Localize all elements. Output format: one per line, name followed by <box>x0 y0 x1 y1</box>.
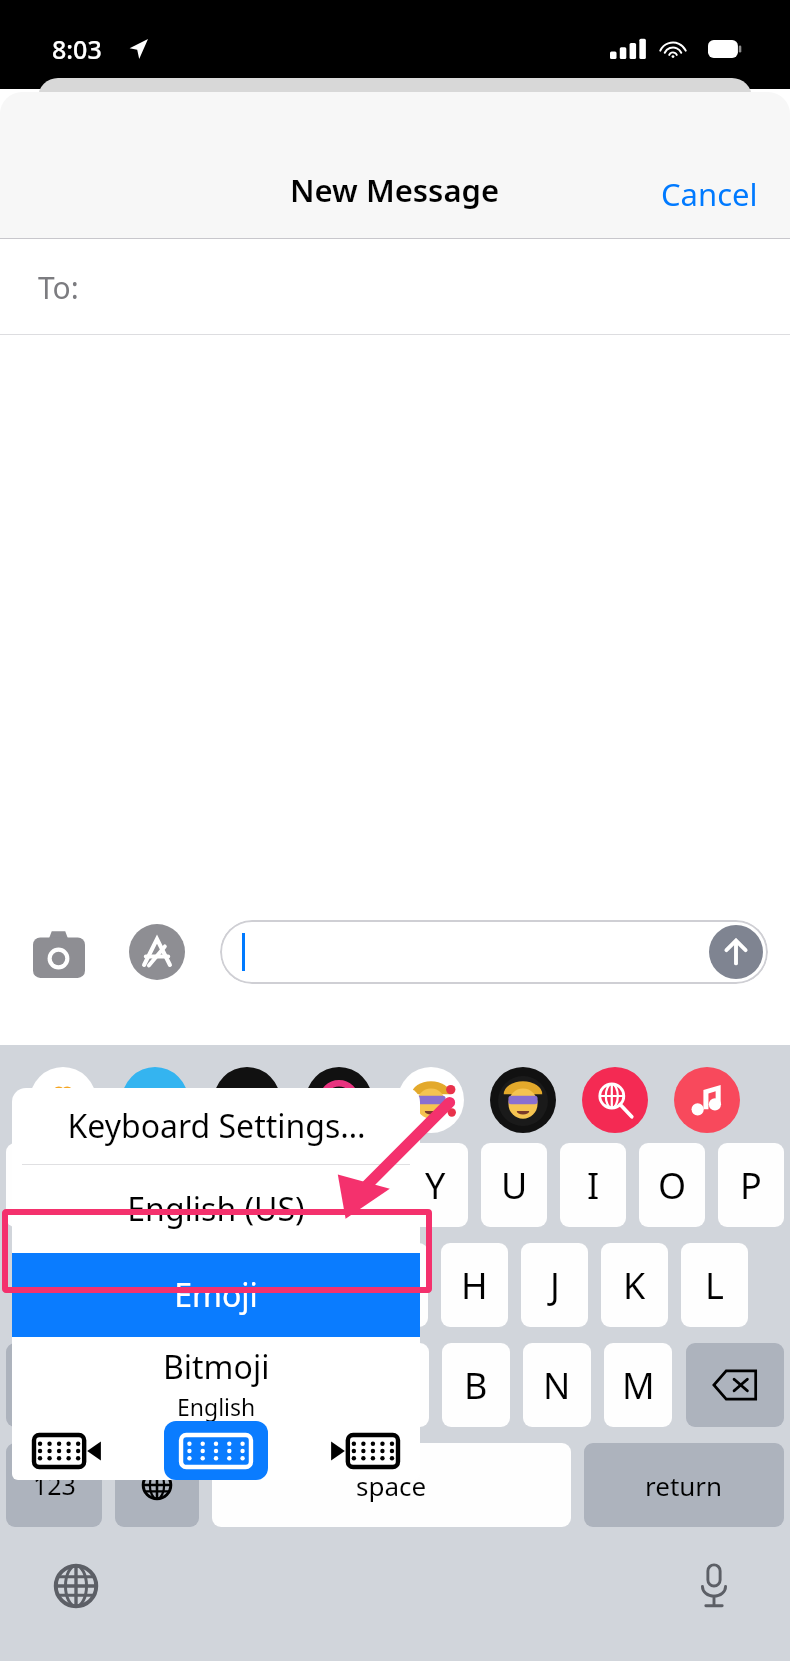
staticText: English (US) <box>127 1187 305 1231</box>
staticText: space <box>356 1468 427 1503</box>
button[interactable]: U <box>481 1143 547 1227</box>
staticText: Bitmoji <box>163 1345 270 1389</box>
button[interactable]: Keyboard layout <box>308 1421 412 1480</box>
staticText: N <box>543 1361 571 1410</box>
staticText: 8:03 <box>52 32 102 66</box>
staticText: X <box>222 1361 244 1410</box>
button[interactable]: English (US) <box>12 1165 420 1253</box>
staticText: Y <box>425 1161 446 1210</box>
button[interactable]: P <box>718 1143 784 1227</box>
button[interactable]: Send <box>220 920 768 984</box>
button[interactable]: Send <box>709 925 763 979</box>
staticText: Emoji <box>174 1273 258 1317</box>
button[interactable]: D <box>201 1243 268 1327</box>
button[interactable]: To: <box>0 239 790 335</box>
button[interactable]: G <box>361 1243 428 1327</box>
button[interactable]: Z <box>118 1343 186 1427</box>
staticText: Q <box>25 1161 54 1210</box>
button[interactable]: A <box>42 1243 108 1327</box>
button[interactable]: Q <box>6 1143 73 1227</box>
button[interactable]: space <box>212 1443 571 1527</box>
button[interactable]: App <box>214 1067 280 1133</box>
button[interactable]: Emoji <box>12 1253 420 1337</box>
staticText: H <box>461 1261 488 1310</box>
staticText: R <box>266 1161 289 1210</box>
button[interactable]: return <box>584 1443 784 1527</box>
button[interactable]: App <box>398 1067 464 1133</box>
staticText: O <box>658 1161 687 1210</box>
button[interactable]: B <box>442 1343 510 1427</box>
staticText: J <box>550 1261 560 1310</box>
button[interactable]: Dictation <box>686 1558 742 1614</box>
button[interactable]: Emoji keyboard <box>48 1558 104 1614</box>
staticText: Keyboard Settings… <box>67 1104 366 1148</box>
staticText: D <box>221 1261 248 1310</box>
staticText: U <box>501 1161 528 1210</box>
button[interactable]: App <box>582 1067 648 1133</box>
button[interactable]: Cancel <box>649 163 770 225</box>
staticText: English <box>177 1391 256 1421</box>
staticText: W <box>102 1161 136 1210</box>
staticText: New Message <box>290 169 500 211</box>
staticText: T <box>346 1161 367 1210</box>
staticText: Cancel <box>661 173 758 215</box>
button[interactable]: Shift <box>6 1343 104 1427</box>
button[interactable]: H <box>441 1243 508 1327</box>
staticText: 123 <box>33 1468 76 1502</box>
button[interactable]: Keyboard layout <box>20 1421 124 1480</box>
button[interactable]: Bitmoji <box>12 1337 420 1421</box>
button[interactable]: App <box>490 1067 556 1133</box>
button[interactable]: M <box>604 1343 672 1427</box>
staticText: B <box>464 1361 488 1410</box>
button[interactable]: O <box>639 1143 705 1227</box>
staticText: A <box>63 1261 87 1310</box>
button[interactable]: N <box>523 1343 591 1427</box>
button[interactable]: App <box>674 1067 740 1133</box>
staticText: E <box>188 1161 209 1210</box>
staticText: S <box>145 1261 165 1310</box>
button[interactable]: R <box>244 1143 310 1227</box>
button[interactable]: X <box>199 1343 267 1427</box>
staticText: M <box>622 1361 655 1410</box>
button[interactable]: 123 <box>6 1443 102 1527</box>
button[interactable]: V <box>361 1343 429 1427</box>
staticText: L <box>705 1261 724 1310</box>
button[interactable]: Keyboard layout <box>164 1421 268 1480</box>
button[interactable]: Backspace <box>686 1343 784 1427</box>
button[interactable]: Switch keyboard <box>115 1443 199 1527</box>
button[interactable]: E <box>165 1143 231 1227</box>
button[interactable]: J <box>521 1243 588 1327</box>
button[interactable]: App <box>306 1067 372 1133</box>
button[interactable]: K <box>601 1243 668 1327</box>
button[interactable]: Camera <box>28 921 90 983</box>
staticText: To: <box>38 267 79 308</box>
button[interactable]: W <box>86 1143 152 1227</box>
staticText: K <box>623 1261 646 1310</box>
button[interactable]: S <box>121 1243 188 1327</box>
button[interactable]: Keyboard Settings… <box>12 1088 420 1164</box>
button[interactable]: F <box>281 1243 348 1327</box>
staticText: F <box>305 1261 324 1310</box>
staticText: return <box>645 1468 723 1503</box>
button[interactable]: Y <box>402 1143 468 1227</box>
button[interactable]: L <box>681 1243 748 1327</box>
button[interactable]: App <box>30 1067 96 1133</box>
staticText: P <box>740 1161 762 1210</box>
button[interactable]: T <box>323 1143 389 1227</box>
staticText: I <box>587 1161 600 1210</box>
button[interactable]: I <box>560 1143 626 1227</box>
button[interactable]: App Store <box>126 921 188 983</box>
button[interactable]: App <box>122 1067 188 1133</box>
staticText: G <box>381 1261 408 1310</box>
